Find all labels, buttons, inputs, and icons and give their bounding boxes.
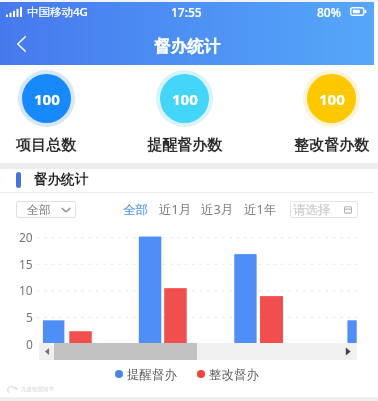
- staticText: 提醒督办数: [147, 136, 222, 155]
- staticText: 提醒督办: [127, 367, 177, 381]
- staticText: 20: [19, 229, 33, 244]
- staticText: 100: [34, 89, 60, 109]
- staticText: 九爱智慧城市: [21, 386, 54, 393]
- staticText: 督办统计: [34, 171, 88, 188]
- staticText: 近3月: [201, 201, 234, 218]
- staticText: 全部: [27, 202, 51, 217]
- button[interactable]: 近3月: [201, 201, 234, 218]
- staticText: 15: [19, 256, 33, 271]
- staticText: 100: [319, 89, 345, 109]
- button[interactable]: 请选择: [290, 201, 358, 218]
- button[interactable]: 100: [22, 74, 71, 123]
- button[interactable]: 近1年: [244, 201, 277, 218]
- staticText: 中国移动4G: [27, 4, 88, 20]
- staticText: 项目总数: [16, 136, 76, 155]
- button[interactable]: 返回: [6, 29, 36, 59]
- button[interactable]: 100: [307, 74, 356, 123]
- staticText: 近1年: [244, 201, 277, 218]
- staticText: 整改督办: [209, 367, 259, 381]
- staticText: 督办统计: [0, 36, 374, 57]
- button[interactable]: 全部: [16, 201, 76, 218]
- staticText: 0: [26, 336, 33, 351]
- button[interactable]: [39, 343, 357, 360]
- staticText: 请选择: [293, 202, 331, 218]
- staticText: 10: [19, 282, 33, 297]
- staticText: 近1月: [159, 201, 192, 218]
- staticText: 80%: [317, 4, 341, 20]
- staticText: 全部: [123, 202, 148, 218]
- staticText: 100: [172, 89, 198, 109]
- button[interactable]: 近1月: [159, 201, 192, 218]
- staticText: 17:55: [171, 4, 202, 20]
- staticText: 整改督办数: [294, 136, 369, 155]
- button[interactable]: 100: [160, 74, 209, 123]
- button[interactable]: 全部: [123, 201, 148, 218]
- staticText: 5: [26, 309, 33, 324]
